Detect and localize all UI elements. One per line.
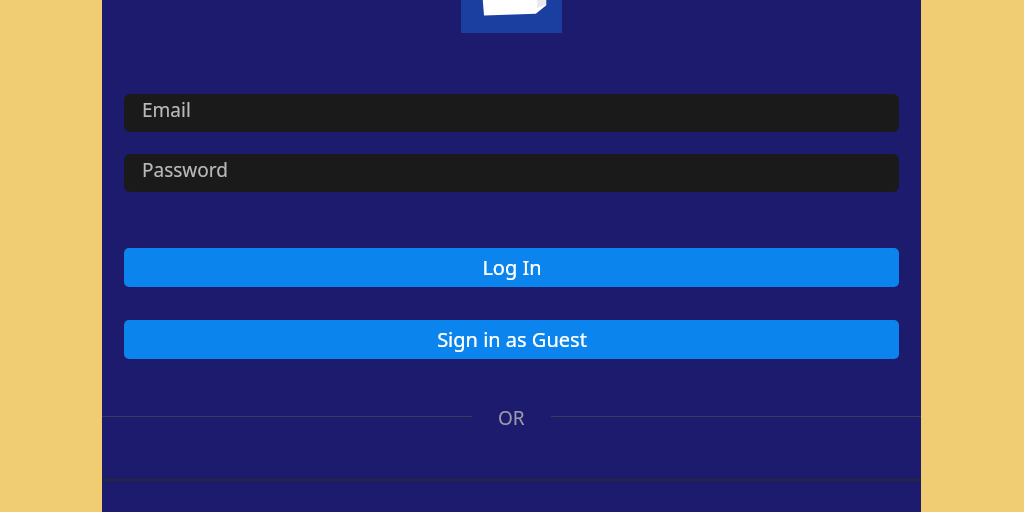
staticText: OR xyxy=(498,405,525,427)
button[interactable]: Password xyxy=(124,154,899,192)
button[interactable]: Log In xyxy=(124,248,899,287)
button[interactable]: Email xyxy=(124,94,899,132)
button[interactable]: Sign in as Guest xyxy=(124,320,899,359)
staticText: Password xyxy=(142,157,228,183)
other: App logo xyxy=(461,0,562,33)
staticText: Log In xyxy=(482,254,542,281)
staticText: Email xyxy=(142,97,191,123)
staticText: Sign in as Guest xyxy=(437,326,587,353)
